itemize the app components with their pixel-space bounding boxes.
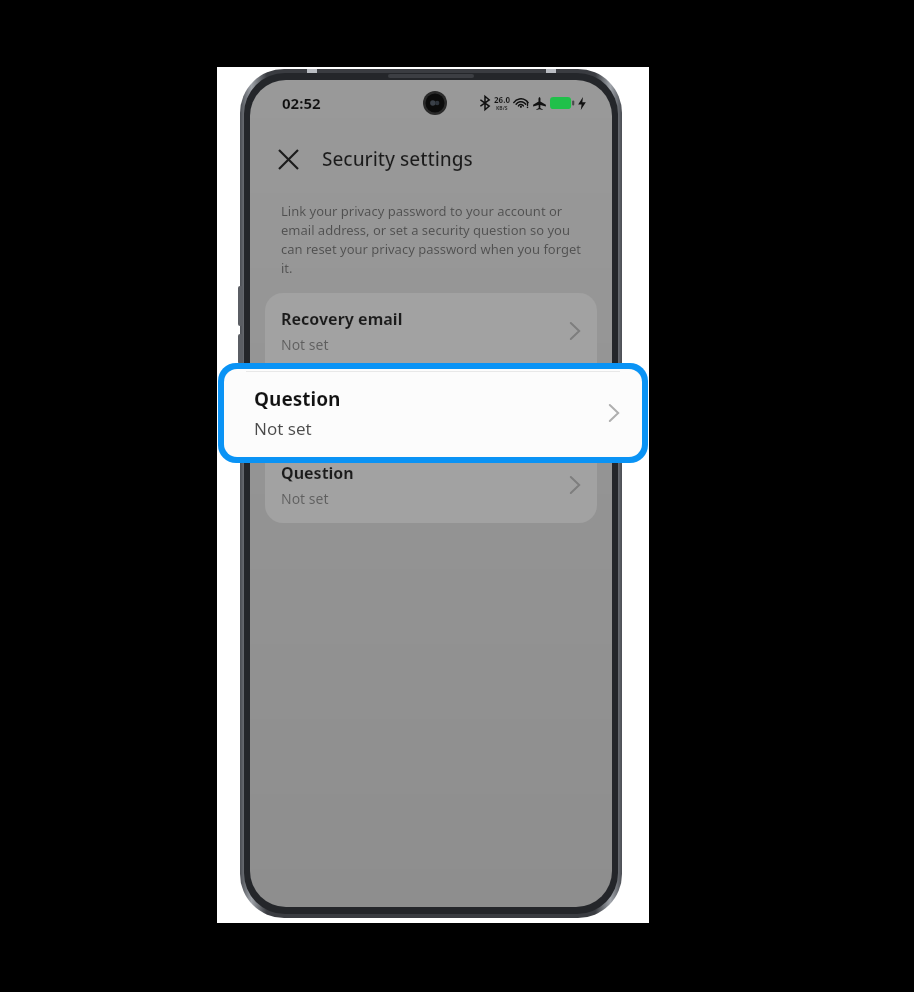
staticText: Recovery email [281, 308, 403, 330]
staticText: 02:52 [282, 93, 321, 113]
staticText: Link your privacy password to your accou… [281, 202, 581, 277]
button[interactable]: Question [218, 363, 648, 463]
button[interactable]: Recovery email [265, 293, 597, 369]
button[interactable]: Close [268, 139, 308, 179]
staticText: Not linked [281, 412, 349, 431]
staticText: Not set [281, 335, 329, 354]
staticText: Security settings [322, 146, 473, 172]
button[interactable]: Question [265, 447, 597, 523]
staticText: KB/S [496, 105, 508, 112]
button[interactable]: Linked account [265, 370, 597, 446]
staticText: Not set [281, 489, 329, 508]
staticText: Linked account [281, 385, 403, 407]
staticText: Not set [254, 417, 312, 440]
staticText: Question [281, 462, 354, 484]
staticText: Question [254, 386, 341, 412]
staticText: 26.0 [494, 94, 510, 105]
